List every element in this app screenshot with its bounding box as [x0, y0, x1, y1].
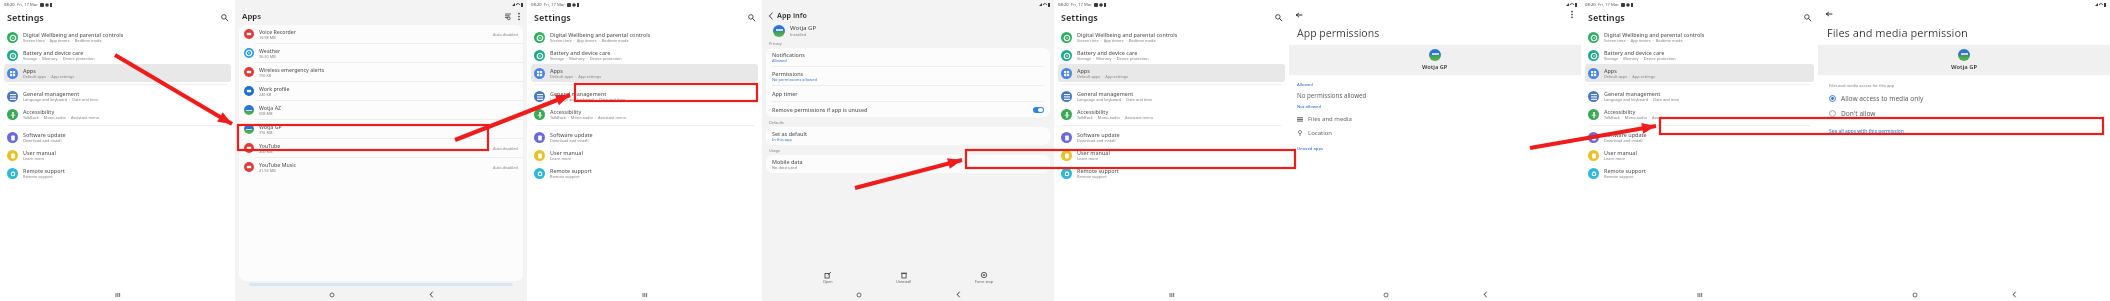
button[interactable]: Open [821, 270, 835, 286]
button[interactable]: Remove permissions if app is unused [766, 102, 1050, 117]
button[interactable]: Don't allow [1818, 106, 2110, 121]
button[interactable]: Battery and device care [4, 46, 231, 64]
button[interactable]: Software update [1058, 128, 1285, 146]
button[interactable]: User manual [4, 146, 231, 164]
button[interactable]: Digital Wellbeing and parental controls [531, 28, 758, 46]
button[interactable]: Notifications [766, 48, 1050, 66]
button[interactable]: Home [326, 289, 337, 300]
button[interactable]: Uninstall [894, 270, 914, 286]
button[interactable]: User manual [1058, 146, 1285, 164]
button[interactable]: See all apps with this permission [1818, 126, 1904, 137]
staticText: Language and keyboard · Date and time [1077, 97, 1153, 102]
button[interactable]: Wireless emergency alerts [239, 63, 523, 81]
button[interactable]: General management [4, 87, 231, 105]
button[interactable]: Force stop [973, 270, 995, 286]
staticText: Language and keyboard · Date and time [550, 97, 626, 102]
button[interactable]: YouTube [239, 139, 523, 157]
button[interactable]: Home [853, 289, 864, 300]
button[interactable]: Wotja GP [239, 120, 523, 138]
button[interactable]: General management [531, 87, 758, 105]
button[interactable]: Digital Wellbeing and parental controls [1585, 28, 1814, 46]
button[interactable]: Accessibility [531, 105, 758, 123]
button[interactable]: Back [1294, 10, 1304, 20]
staticText: Download and install [550, 138, 589, 143]
button[interactable]: Allow access to media only [1818, 91, 2110, 106]
button[interactable]: Recents [639, 289, 650, 300]
button[interactable]: Back [766, 11, 775, 20]
button[interactable]: Battery and device care [1585, 46, 1814, 64]
button[interactable]: Accessibility [1585, 105, 1814, 123]
staticText: User manual [1604, 149, 1637, 156]
button[interactable]: Battery and device care [531, 46, 758, 64]
staticText: YouTube Music [259, 161, 297, 168]
button[interactable]: App timer [766, 86, 1050, 101]
button[interactable]: Work profile [239, 82, 523, 100]
button[interactable]: More options [1566, 9, 1577, 20]
button[interactable]: Voice Recorder [239, 25, 523, 43]
button[interactable]: More options [513, 11, 524, 22]
button[interactable]: Home [1909, 289, 1920, 300]
button[interactable]: Search settings [746, 12, 757, 23]
staticText: General management [1604, 90, 1661, 97]
button[interactable]: Back [427, 290, 436, 299]
button[interactable]: Apps [1585, 64, 1814, 82]
staticText: Not allowed [1297, 104, 1322, 110]
button[interactable]: User manual [531, 146, 758, 164]
staticText: Fri, 17 Mar [544, 2, 565, 8]
staticText: Files and media access for this app [1829, 83, 1895, 88]
button[interactable]: Remote support [1585, 164, 1814, 182]
staticText: Remove permissions if app is unused [772, 106, 1033, 113]
button[interactable]: User manual [1585, 146, 1814, 164]
button[interactable]: Sort and search [503, 12, 513, 22]
staticText: Settings [1061, 11, 1098, 23]
staticText: Default apps · App settings [1077, 74, 1129, 79]
button[interactable]: Permissions [766, 67, 1050, 85]
button[interactable]: Remote support [4, 164, 231, 182]
staticText: 41.92 MB [259, 168, 276, 173]
button[interactable]: Remote support [531, 164, 758, 182]
button[interactable]: Software update [531, 128, 758, 146]
button[interactable]: Location [1289, 126, 1581, 140]
button[interactable]: Software update [4, 128, 231, 146]
button[interactable]: Accessibility [4, 105, 231, 123]
button[interactable]: Apps [4, 64, 231, 82]
button[interactable]: Apps [1058, 64, 1285, 82]
staticText: 08:20 [1058, 2, 1069, 8]
button[interactable]: Files and media [1289, 112, 1581, 126]
button[interactable]: Back [1481, 290, 1490, 299]
button[interactable]: Search settings [1273, 12, 1284, 23]
staticText: Open [823, 279, 833, 284]
staticText: Default apps · App settings [550, 74, 602, 79]
button[interactable]: Back [1824, 9, 1834, 19]
button[interactable]: Recents [1694, 289, 1705, 300]
button[interactable]: Search settings [1802, 12, 1813, 23]
button[interactable]: Weather [239, 44, 523, 62]
staticText: No permissions allowed [1297, 91, 1367, 99]
button[interactable]: Wotja AZ [239, 101, 523, 119]
button[interactable]: Set as default [766, 127, 1050, 145]
staticText: User manual [1077, 149, 1110, 156]
button[interactable]: Home [1380, 289, 1391, 300]
button[interactable]: Apps [531, 64, 758, 82]
button[interactable]: Accessibility [1058, 105, 1285, 123]
button[interactable]: Back [2010, 290, 2019, 299]
staticText: 08:20 [4, 2, 15, 8]
button[interactable]: Search settings [219, 12, 230, 23]
staticText: App permissions [1297, 26, 1380, 40]
staticText: Location [1308, 129, 1333, 137]
staticText: Accessibility [550, 108, 582, 115]
button[interactable]: Recents [112, 289, 123, 300]
staticText: Remote support [1604, 167, 1646, 174]
button[interactable]: General management [1585, 87, 1814, 105]
button[interactable]: Battery and device care [1058, 46, 1285, 64]
button[interactable]: Recents [1166, 289, 1177, 300]
button[interactable]: Digital Wellbeing and parental controls [1058, 28, 1285, 46]
button[interactable]: Digital Wellbeing and parental controls [4, 28, 231, 46]
staticText: Voice Recorder [259, 28, 296, 35]
button[interactable]: General management [1058, 87, 1285, 105]
button[interactable]: YouTube Music [239, 158, 523, 176]
button[interactable]: Back [954, 290, 963, 299]
button[interactable]: Remote support [1058, 164, 1285, 182]
button[interactable]: Mobile data [766, 155, 1050, 173]
button[interactable]: Software update [1585, 128, 1814, 146]
